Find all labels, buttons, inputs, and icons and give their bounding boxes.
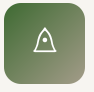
button[interactable]: Launch [4, 3, 85, 84]
